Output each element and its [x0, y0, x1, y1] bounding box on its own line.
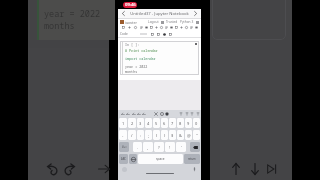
button[interactable]: Toolbar action 1: [120, 24, 126, 31]
button[interactable]: Toolbar action 11: [174, 24, 179, 31]
button[interactable]: 4: [145, 118, 152, 128]
button[interactable]: Format 1: [178, 111, 184, 117]
button[interactable]: Run cell: [262, 159, 282, 179]
button[interactable]: Toolbar action 13: [184, 24, 189, 31]
staticText: Trusted: [166, 20, 178, 24]
button[interactable]: ): [161, 130, 168, 140]
button[interactable]: Toolbar action 4: [138, 24, 144, 31]
button[interactable]: Toolbar action 5: [144, 24, 149, 31]
staticText: 8: [179, 121, 182, 126]
button[interactable]: Undo: [43, 159, 63, 179]
button[interactable]: return: [184, 154, 200, 164]
button[interactable]: space: [138, 154, 183, 164]
staticText: 6: [163, 121, 166, 126]
staticText: -: [122, 133, 124, 138]
button[interactable]: Toolbar action 6: [149, 24, 154, 31]
button[interactable]: Switch keyboard: [129, 154, 137, 164]
staticText: In [ ]:: [125, 42, 140, 47]
button[interactable]: Cell action 4: [169, 33, 172, 36]
button[interactable]: Editor action 3: [131, 111, 137, 117]
staticText: year = 2022: [125, 64, 148, 69]
staticText: ABC: [121, 157, 126, 161]
staticText: 0: [195, 121, 198, 126]
staticText: 3: [139, 121, 142, 126]
button[interactable]: 1: [119, 118, 127, 128]
button[interactable]: Toolbar action 10: [169, 24, 174, 31]
button[interactable]: 5: [153, 118, 160, 128]
button[interactable]: ,: [143, 142, 153, 152]
button[interactable]: ?: [154, 142, 164, 152]
button[interactable]: 8: [177, 118, 184, 128]
button[interactable]: .: [133, 142, 142, 152]
button[interactable]: Cut: [153, 111, 159, 117]
button[interactable]: $: [169, 130, 176, 140]
button[interactable]: Toolbar action 2: [126, 24, 132, 31]
button[interactable]: Dictate: [192, 167, 197, 172]
button[interactable]: (: [153, 130, 160, 140]
button[interactable]: ': [176, 142, 186, 152]
button[interactable]: Toolbar action 8: [159, 24, 164, 31]
staticText: return: [188, 157, 196, 161]
staticText: jupyter: [125, 20, 137, 25]
button[interactable]: Emoji: [122, 167, 127, 172]
staticText: months: [125, 69, 138, 74]
button[interactable]: Editor action 5: [141, 111, 147, 117]
button[interactable]: 9: [185, 118, 192, 128]
staticText: .: [137, 145, 139, 150]
button[interactable]: ;: [145, 130, 152, 140]
staticText: /: [131, 133, 133, 138]
button[interactable]: Redo: [59, 159, 79, 179]
staticText: ": [196, 133, 198, 138]
button[interactable]: Editor action 1: [120, 111, 126, 117]
button[interactable]: Toolbar action 15: [194, 24, 199, 31]
button[interactable]: ABC: [119, 154, 128, 164]
staticText: ,: [147, 145, 149, 150]
button[interactable]: Move cell up: [226, 159, 246, 179]
button[interactable]: Toolbar action 3: [132, 24, 138, 31]
staticText: months: [44, 20, 75, 32]
staticText: Code: [120, 32, 128, 36]
button[interactable]: 2: [128, 118, 136, 128]
button[interactable]: Toolbar action 14: [189, 24, 194, 31]
button[interactable]: Toolbar action 9: [164, 24, 169, 31]
button[interactable]: Cell action 3: [163, 33, 166, 36]
button[interactable]: Move cell down: [245, 159, 265, 179]
button[interactable]: Format 2: [184, 111, 190, 117]
button[interactable]: 3: [137, 118, 144, 128]
button[interactable]: !: [165, 142, 175, 152]
button[interactable]: #+=: [119, 142, 129, 152]
button[interactable]: Copy: [159, 111, 165, 117]
staticText: (: [156, 133, 158, 138]
button[interactable]: 0: [193, 118, 200, 128]
button[interactable]: 6: [161, 118, 168, 128]
button[interactable]: Editor action 4: [136, 111, 142, 117]
staticText: year = 2022: [44, 8, 101, 20]
staticText: 09:46: [125, 2, 136, 8]
button[interactable]: 7: [169, 118, 176, 128]
button[interactable]: Forward: [190, 9, 201, 18]
staticText: Untitled37 - Jupyter Notebook: [129, 11, 190, 17]
button[interactable]: Forward: [94, 159, 114, 179]
button[interactable]: Backspace: [190, 142, 200, 152]
button[interactable]: ": [193, 130, 200, 140]
staticText: # Print calendar: [125, 48, 158, 53]
button[interactable]: :: [137, 130, 144, 140]
button[interactable]: Editor action 2: [125, 111, 131, 117]
staticText: ): [164, 133, 166, 138]
button[interactable]: /: [128, 130, 136, 140]
button[interactable]: @: [185, 130, 192, 140]
button[interactable]: Paste: [164, 111, 170, 117]
button[interactable]: Cell action 1: [151, 33, 154, 36]
staticText: &: [179, 133, 182, 138]
button[interactable]: Format 3: [189, 111, 195, 117]
staticText: 1: [122, 121, 125, 126]
staticText: :: [140, 133, 142, 138]
button[interactable]: Cell action 2: [157, 33, 160, 36]
staticText: 4: [147, 121, 150, 126]
button[interactable]: Toolbar action 7: [154, 24, 159, 31]
button[interactable]: -: [119, 130, 127, 140]
button[interactable]: Format 4: [195, 111, 201, 117]
button[interactable]: Back: [118, 9, 129, 18]
button[interactable]: Toolbar action 12: [179, 24, 184, 31]
button[interactable]: &: [177, 130, 184, 140]
